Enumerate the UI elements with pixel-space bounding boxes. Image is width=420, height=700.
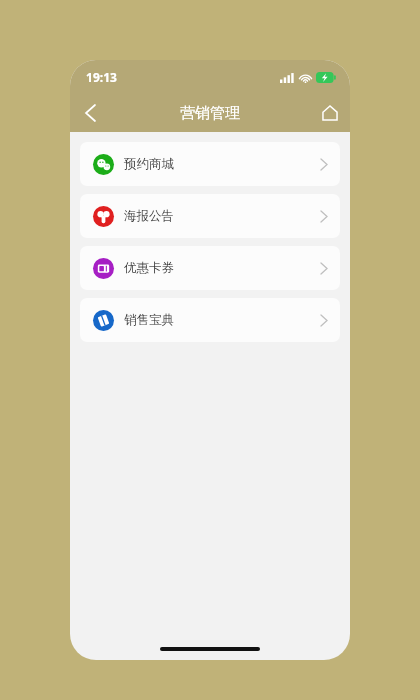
- button[interactable]: Home: [310, 94, 350, 132]
- button[interactable]: Back: [70, 94, 110, 132]
- button[interactable]: 销售宝典: [80, 298, 340, 342]
- staticText: 海报公告: [124, 208, 174, 224]
- staticText: 营销管理: [180, 104, 240, 123]
- button[interactable]: 预约商城: [80, 142, 340, 186]
- staticText: 销售宝典: [124, 312, 174, 328]
- button[interactable]: 优惠卡券: [80, 246, 340, 290]
- staticText: 19:13: [86, 69, 117, 85]
- staticText: 预约商城: [124, 156, 174, 172]
- button[interactable]: 海报公告: [80, 194, 340, 238]
- staticText: 优惠卡券: [124, 260, 174, 276]
